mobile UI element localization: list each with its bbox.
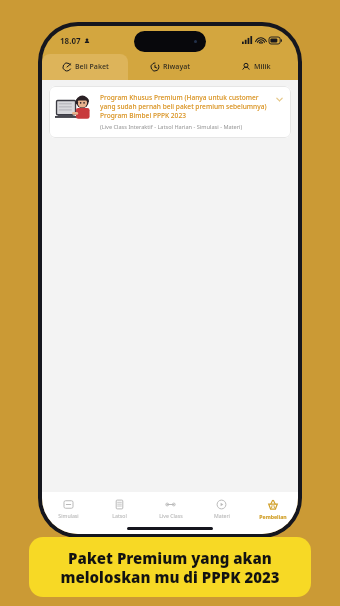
button[interactable]: Latsol — [94, 496, 145, 534]
staticText: Riwayat — [163, 62, 191, 72]
staticText: 18.07 — [60, 35, 81, 46]
staticText: Materi — [214, 512, 230, 519]
button[interactable]: Riwayat — [128, 54, 213, 80]
staticText: Beli Paket — [75, 62, 109, 72]
button[interactable]: Simulasi — [42, 496, 94, 534]
button[interactable]: Materi — [196, 496, 247, 534]
staticText: Paket Premium yang akan meloloskan mu di… — [60, 548, 280, 587]
staticText: Simulasi — [58, 512, 79, 519]
staticText: Latsol — [112, 512, 127, 519]
staticText: Live Class — [159, 512, 183, 519]
button[interactable]: Milik — [213, 54, 298, 80]
staticText: Milik — [254, 62, 271, 72]
button[interactable]: Live Class — [145, 496, 196, 534]
button[interactable]: Program Khusus Premium (Hanya untuk cust… — [49, 86, 291, 138]
staticText: Program Khusus Premium (Hanya untuk cust… — [100, 93, 269, 120]
button[interactable]: Beli Paket — [42, 54, 128, 80]
button[interactable]: Pembelian — [247, 496, 298, 534]
staticText: Pembelian — [259, 513, 287, 520]
button[interactable]: Expand — [273, 93, 285, 105]
staticText: (Live Class Interaktif - Latsol Harian -… — [100, 123, 243, 131]
